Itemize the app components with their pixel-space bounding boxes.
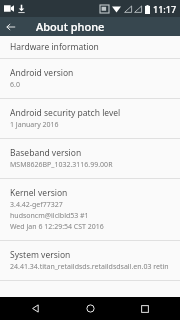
button[interactable]: Navigate up bbox=[0, 17, 22, 36]
button[interactable]: Android security patch level bbox=[0, 99, 180, 138]
button[interactable]: System version bbox=[0, 241, 180, 280]
button[interactable]: Baseband version bbox=[0, 139, 180, 178]
staticText: 11:17 bbox=[153, 3, 177, 15]
button[interactable]: Recent apps bbox=[125, 297, 165, 320]
staticText: hudsoncm@ilclbld53 #1 bbox=[10, 211, 89, 221]
staticText: Kernel version bbox=[10, 187, 68, 199]
staticText: Android version bbox=[10, 67, 74, 79]
button[interactable]: Home bbox=[70, 297, 110, 320]
button[interactable]: Android version bbox=[0, 59, 180, 98]
button[interactable]: Kernel version bbox=[0, 179, 180, 240]
staticText: 24.41.34.titan_retaildsds.retaildsdsall.… bbox=[10, 262, 169, 272]
button[interactable]: Back bbox=[15, 297, 55, 320]
staticText: Wed Jan 6 12:29:54 CST 2016 bbox=[10, 222, 104, 232]
staticText: Hardware information bbox=[10, 41, 99, 53]
staticText: About phone bbox=[36, 19, 105, 34]
staticText: 6.0 bbox=[10, 80, 20, 90]
staticText: 3.4.42-gef77327 bbox=[10, 200, 63, 210]
staticText: MSM8626BP_1032.3116.99.00R EMEA_DSDS_CUS… bbox=[10, 160, 174, 170]
staticText: Baseband version bbox=[10, 147, 82, 159]
staticText: System version bbox=[10, 249, 71, 261]
staticText: 1 January 2016 bbox=[10, 120, 59, 130]
staticText: Android security patch level bbox=[10, 107, 121, 119]
